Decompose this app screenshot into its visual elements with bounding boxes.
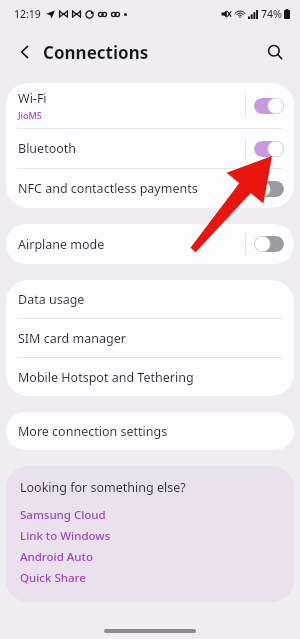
staticText: Looking for something else? [20, 479, 186, 496]
button[interactable]: Airplane mode [6, 224, 294, 264]
button[interactable]: Wi-Fi [6, 83, 294, 128]
button[interactable]: NFC and contactless payments [6, 169, 294, 208]
staticText: Wi-Fi [18, 90, 47, 107]
button[interactable]: Bluetooth [6, 129, 294, 168]
button[interactable]: SIM card manager [6, 319, 294, 357]
staticText: 74% [261, 7, 282, 21]
staticText: Mobile Hotspot and Tethering [18, 369, 194, 386]
staticText: 12:19 [14, 7, 41, 21]
staticText: Airplane mode [18, 236, 105, 253]
button[interactable]: Samsung Cloud [20, 504, 280, 525]
button[interactable]: Link to Windows [20, 525, 280, 546]
staticText: Connections [43, 41, 149, 64]
button[interactable]: On [254, 98, 284, 114]
staticText: Data usage [18, 291, 85, 308]
staticText: JioM5 [18, 109, 42, 121]
button[interactable]: More connection settings [6, 412, 294, 450]
staticText: NFC and contactless payments [18, 180, 198, 197]
button[interactable]: Off [254, 181, 284, 197]
button[interactable]: Search [259, 36, 291, 68]
staticText: More connection settings [18, 423, 168, 440]
staticText: Quick Share [20, 570, 86, 586]
staticText: Link to Windows [20, 528, 111, 544]
staticText: Bluetooth [18, 140, 77, 157]
button[interactable]: Android Auto [20, 546, 280, 567]
button[interactable]: Data usage [6, 280, 294, 318]
button[interactable]: Mobile Hotspot and Tethering [6, 358, 294, 396]
staticText: Samsung Cloud [20, 507, 106, 523]
staticText: Android Auto [20, 549, 93, 565]
button[interactable]: Off [254, 236, 284, 252]
staticText: SIM card manager [18, 330, 126, 347]
button[interactable]: Quick Share [20, 567, 280, 588]
button[interactable]: On [254, 141, 284, 157]
button[interactable]: Back [10, 37, 40, 67]
